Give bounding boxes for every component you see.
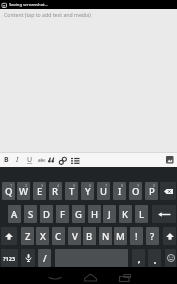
button[interactable]: W [17,182,30,200]
staticText: U [27,155,33,165]
button[interactable] [1,227,17,245]
staticText: I [118,185,122,198]
staticText: P [149,185,155,198]
staticText: 8 [121,183,124,188]
staticText: 0 [153,183,156,188]
staticText: W [19,185,28,198]
button[interactable]: V [68,227,81,245]
staticText: X [40,230,46,243]
button[interactable] [152,205,176,223]
button[interactable]: T [65,182,78,200]
staticText: L [139,208,145,221]
staticText: K [122,208,129,221]
staticText: H [91,208,99,221]
staticText: E [37,185,43,198]
staticText: 7 [105,183,108,188]
staticText: D [43,208,50,221]
button[interactable]: D [40,205,53,223]
staticText: ?123 [3,255,16,262]
button[interactable]: Content (tap to add text and media) [0,9,177,152]
staticText: ! [135,230,138,243]
staticText: J [108,208,111,221]
button[interactable] [148,249,161,267]
staticText: N [102,230,110,243]
button[interactable]: J [103,205,116,223]
button[interactable]: Q [2,182,15,200]
staticText: 2 [25,183,28,188]
button[interactable]: M [114,227,127,245]
staticText: 1 [10,183,13,188]
staticText: 9 [137,183,140,188]
button[interactable]: R [49,182,62,200]
button[interactable]: ?123 [1,249,18,267]
button[interactable]: N [99,227,112,245]
button[interactable]: G [72,205,85,223]
staticText: B [86,230,93,243]
button[interactable] [82,273,98,283]
staticText: R [52,185,59,198]
button[interactable]: U [27,155,38,165]
button[interactable]: I [16,155,27,165]
button[interactable]: F [56,205,69,223]
button[interactable]: X [36,227,49,245]
button[interactable]: abc [38,157,48,163]
button[interactable]: A [8,205,21,223]
staticText: Q [5,185,13,198]
button[interactable]: L [135,205,148,223]
staticText: 3 [41,183,44,188]
staticText: 5 [73,183,76,188]
staticText: C [55,230,62,243]
staticText: U [100,185,108,198]
button[interactable] [160,182,176,200]
button[interactable]: ? [146,227,159,245]
button[interactable] [163,227,176,245]
button[interactable]: B [83,227,96,245]
button[interactable] [116,273,134,283]
staticText: A [11,208,18,221]
staticText: I [16,155,19,165]
staticText: S [28,208,34,221]
staticText: O [132,185,140,198]
staticText: Y [85,185,91,198]
button[interactable] [132,249,145,267]
staticText: T [69,185,75,198]
button[interactable]: S [24,205,37,223]
button[interactable] [71,156,82,165]
button[interactable]: B [4,155,16,165]
button[interactable] [165,155,174,164]
staticText: abc [38,157,46,163]
button[interactable]: E [33,182,46,200]
staticText: ? [150,230,155,243]
button[interactable]: / [38,249,51,267]
staticText: G [75,208,82,221]
button[interactable] [46,273,64,283]
button[interactable]: U [97,182,110,200]
button[interactable]: K [119,205,132,223]
staticText: Z [25,230,31,243]
staticText: Saving screenshot... [9,2,49,8]
button[interactable]: Z [21,227,34,245]
button[interactable] [165,249,176,267]
button[interactable]: O [129,182,142,200]
staticText: Content (tap to add text and media) [4,11,91,18]
staticText: 6 [89,183,92,188]
button[interactable]: ! [130,227,143,245]
staticText: B [4,155,9,165]
button[interactable]: Y [81,182,94,200]
button[interactable] [21,249,35,267]
button[interactable]: C [52,227,65,245]
button[interactable]: P [145,182,158,200]
staticText: V [72,230,78,243]
staticText: M [116,230,125,243]
button[interactable] [59,156,71,165]
staticText: / [43,252,47,265]
staticText: F [60,208,66,221]
button[interactable]: H [88,205,101,223]
button[interactable]: I [113,182,126,200]
staticText: 4 [57,183,60,188]
button[interactable] [48,156,59,164]
